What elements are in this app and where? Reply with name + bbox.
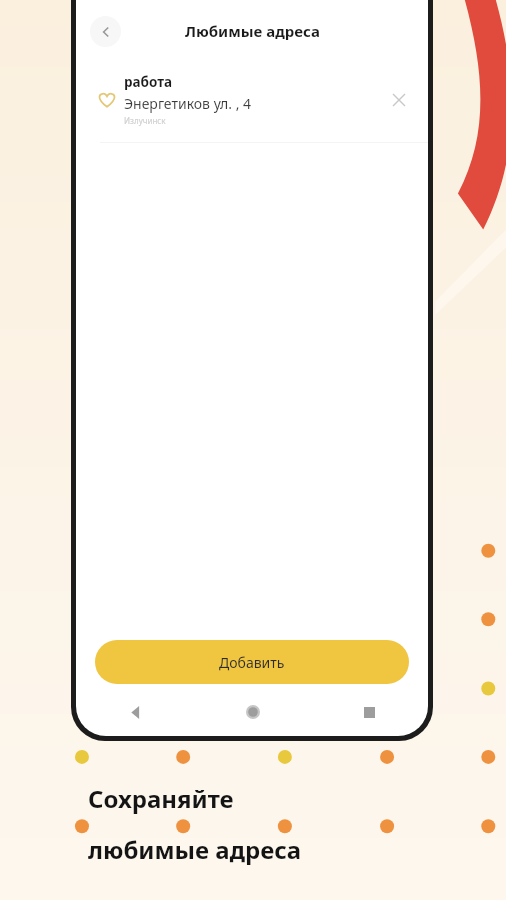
staticText: Излучинск [124, 115, 166, 126]
button[interactable]: Back [90, 16, 121, 47]
button[interactable]: Home [194, 697, 311, 727]
staticText: Добавить [219, 653, 285, 672]
staticText: Сохраняйте [88, 782, 234, 815]
staticText: любимые адреса [88, 833, 302, 866]
button[interactable]: Recents [311, 697, 428, 727]
staticText: Любимые адреса [185, 21, 320, 41]
button[interactable]: Remove [384, 85, 414, 115]
staticText: Энергетиков ул. , 4 [124, 94, 252, 113]
staticText: работа [124, 73, 173, 91]
button[interactable]: Back [76, 697, 194, 727]
button[interactable]: Добавить [95, 640, 409, 684]
button[interactable]: работа [76, 73, 428, 126]
